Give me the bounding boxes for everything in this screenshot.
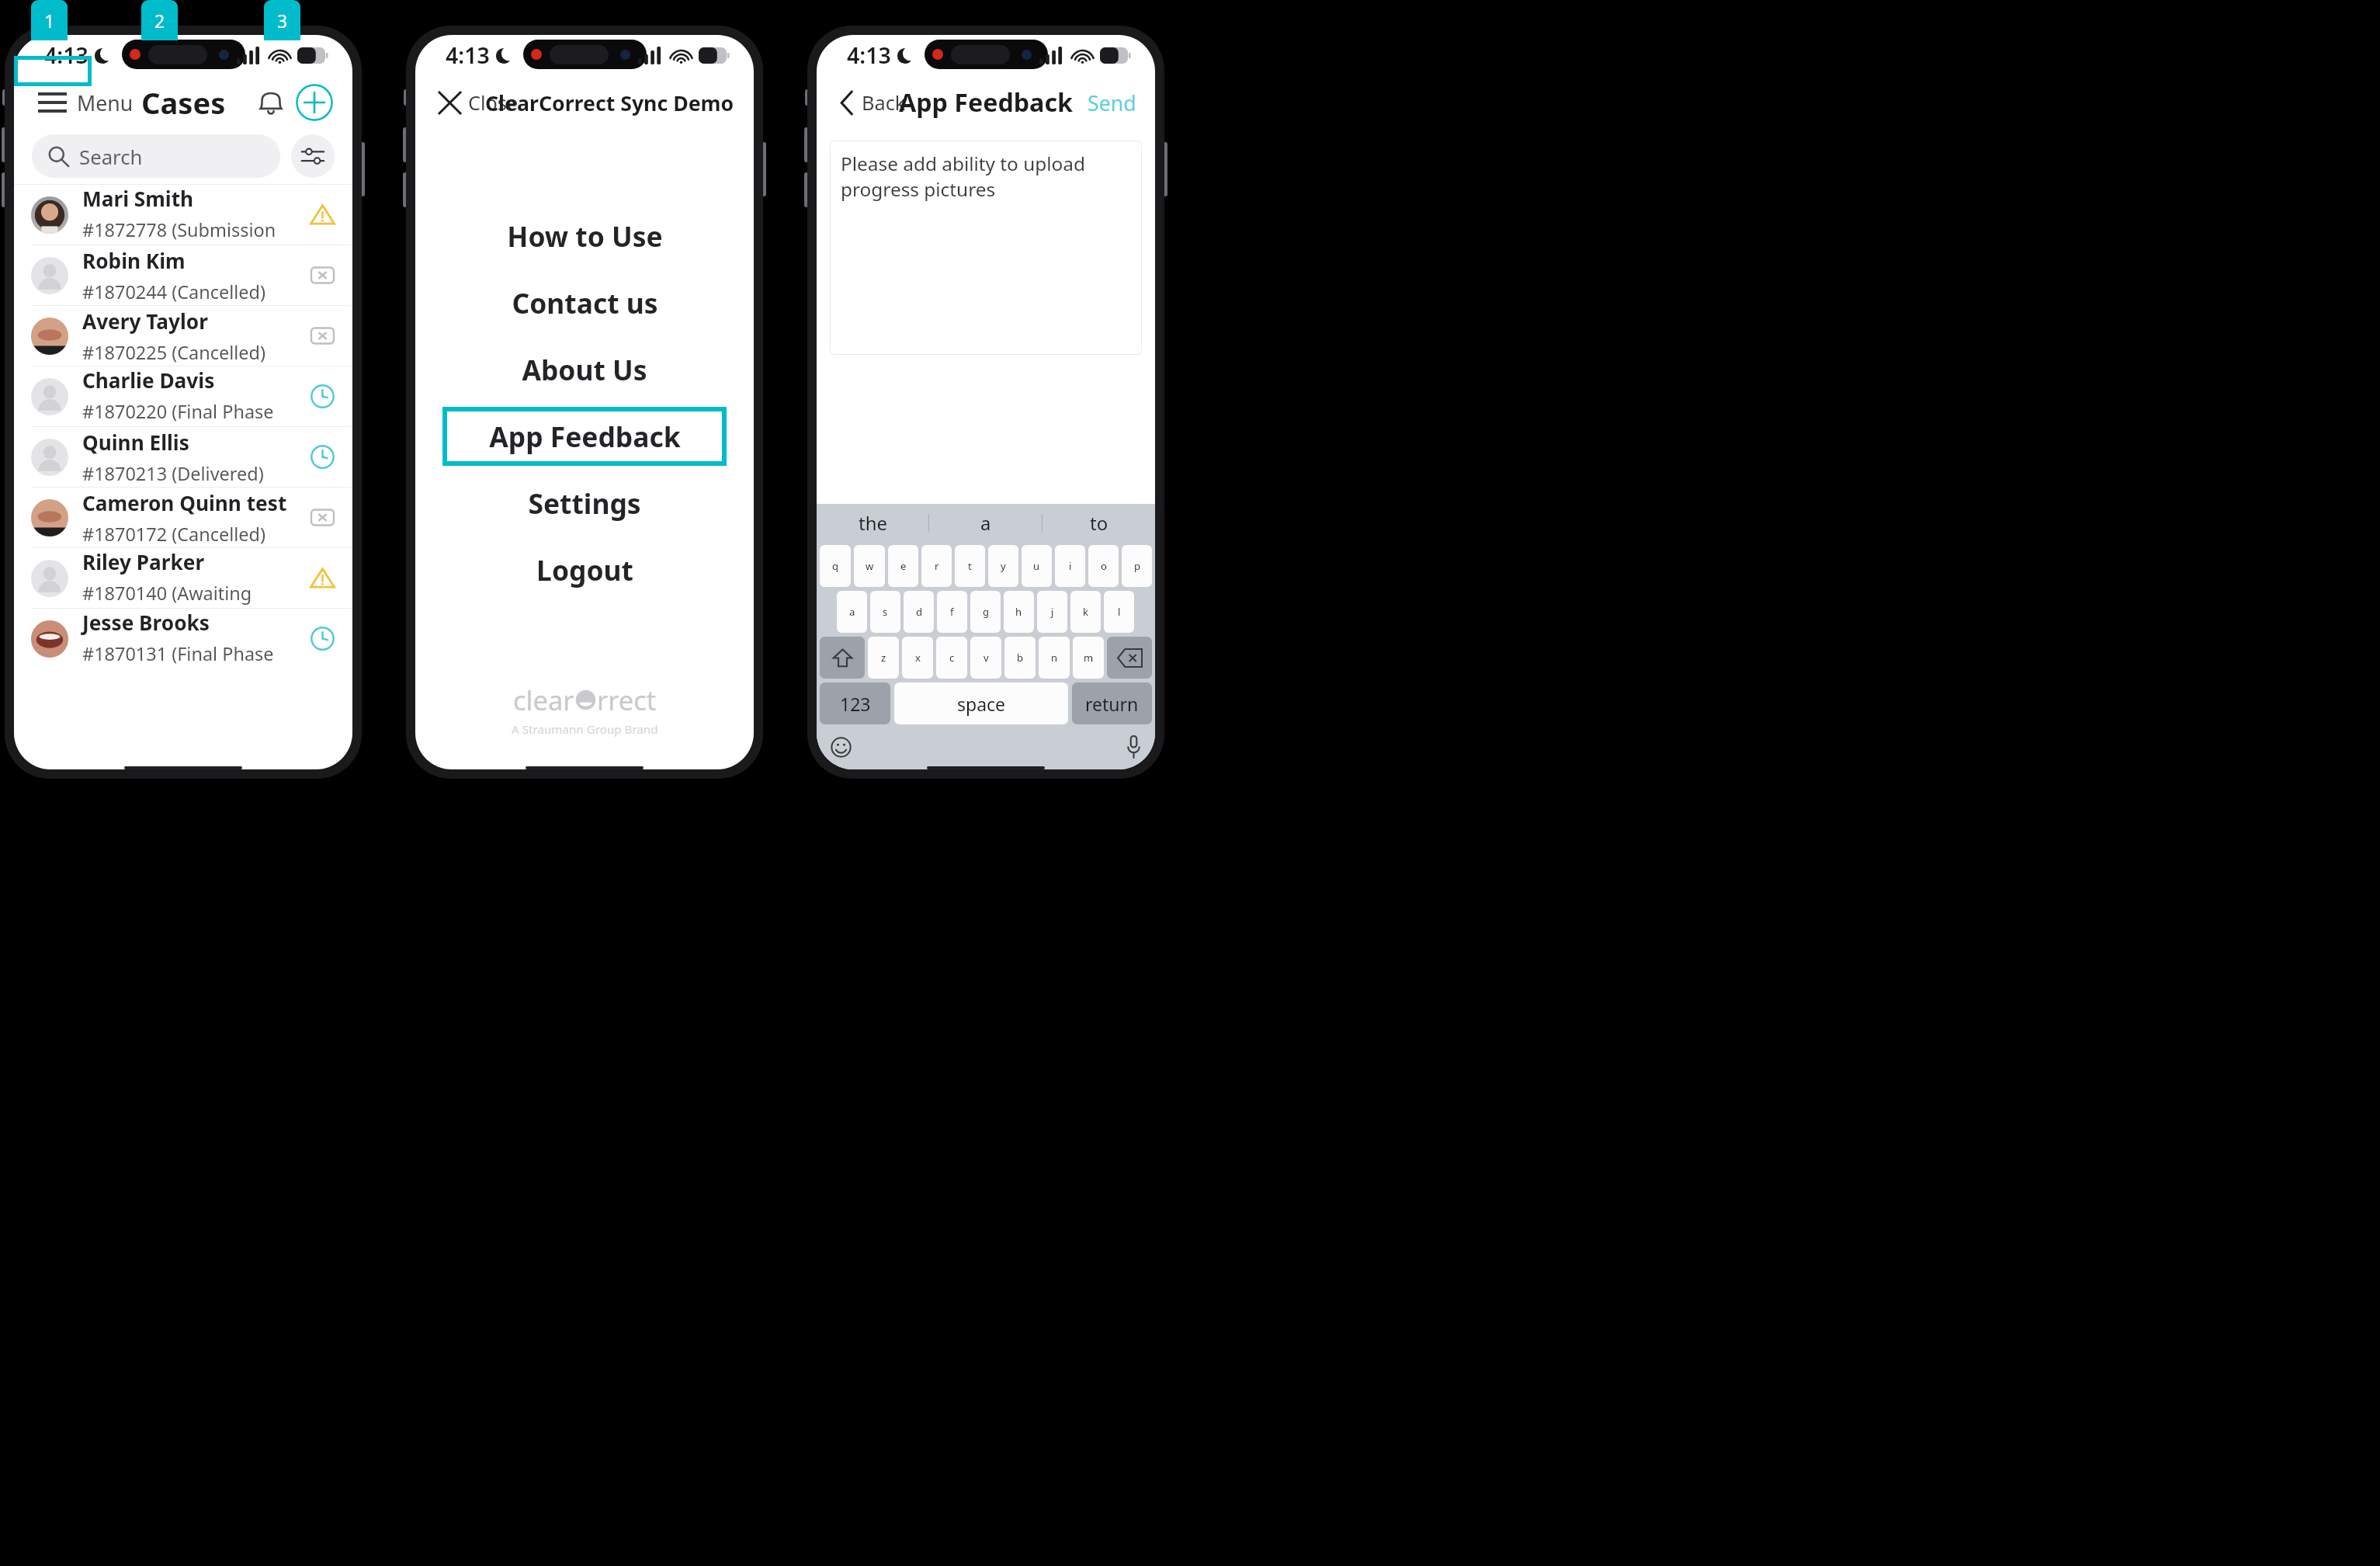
staticText: Quinn Ellis [82, 429, 189, 457]
button[interactable]: Shift [820, 637, 865, 679]
button[interactable]: Charlie Davis [14, 366, 352, 426]
staticText: x [915, 651, 921, 665]
button[interactable]: x [902, 637, 933, 679]
staticText: space [957, 692, 1006, 716]
staticText: clear [513, 682, 574, 718]
staticText: 4:13 [44, 40, 88, 71]
staticText: q [832, 559, 838, 573]
button[interactable]: y [988, 545, 1018, 587]
staticText: g [983, 605, 989, 619]
staticText: e [900, 559, 907, 573]
staticText: 123 [840, 692, 871, 716]
button[interactable]: App Feedback [442, 407, 727, 466]
button[interactable]: Riley Parker [14, 548, 352, 608]
staticText: l [1118, 605, 1121, 619]
button[interactable]: Settings [442, 474, 727, 533]
staticText: Menu [77, 89, 134, 116]
button[interactable]: n [1039, 637, 1070, 679]
button[interactable]: z [868, 637, 899, 679]
button[interactable]: Notifications [252, 84, 290, 121]
button[interactable]: a [929, 504, 1042, 541]
staticText: Cameron Quinn test [82, 489, 287, 517]
button[interactable]: return [1072, 682, 1152, 724]
button[interactable]: Robin Kim [14, 245, 352, 305]
button[interactable]: space [894, 682, 1068, 724]
button[interactable]: a [837, 591, 867, 633]
button[interactable]: q [820, 545, 851, 587]
staticText: Close [468, 89, 519, 116]
button[interactable]: l [1104, 591, 1134, 633]
button[interactable]: Backspace [1107, 637, 1152, 679]
button[interactable]: t [955, 545, 985, 587]
button[interactable]: Search [32, 134, 280, 178]
staticText: j [1051, 605, 1054, 619]
staticText: n [1051, 651, 1058, 665]
button[interactable]: e [888, 545, 918, 587]
button[interactable]: Close [435, 85, 523, 120]
button[interactable]: Back [835, 85, 911, 120]
staticText: App Feedback [899, 85, 1073, 120]
button[interactable]: s [870, 591, 900, 633]
staticText: How to Use [507, 217, 663, 255]
button[interactable]: Avery Taylor [14, 306, 352, 366]
button[interactable]: Please add ability to upload progress pi… [830, 141, 1142, 355]
button[interactable]: Add case [296, 84, 333, 121]
button[interactable]: Filter [291, 134, 335, 178]
button[interactable]: Dictate [1123, 733, 1144, 761]
button[interactable]: the [817, 504, 928, 541]
staticText: Riley Parker [82, 548, 205, 576]
staticText: 4:13 [847, 40, 891, 71]
staticText: k [1083, 605, 1088, 619]
staticText: Charlie Davis [82, 366, 215, 394]
button[interactable]: Logout [442, 540, 727, 599]
staticText: #1870220 (Final Phase Delivered) [82, 399, 304, 426]
button[interactable]: c [936, 637, 967, 679]
button[interactable]: Jesse Brooks [14, 609, 352, 668]
button[interactable]: Contact us [442, 273, 727, 332]
staticText: ClearCorrect Sync Demo [485, 89, 734, 116]
button[interactable]: 123 [820, 682, 890, 724]
button[interactable]: Cameron Quinn test [14, 488, 352, 547]
staticText: #1870225 (Cancelled) [82, 340, 265, 365]
staticText: p [1134, 559, 1140, 573]
staticText: a [980, 510, 991, 536]
staticText: to [1090, 510, 1108, 536]
staticText: z [881, 651, 886, 665]
staticText: Back [862, 89, 906, 116]
button[interactable]: f [937, 591, 967, 633]
staticText: r [935, 559, 939, 573]
button[interactable]: About Us [442, 340, 727, 399]
staticText: b [1017, 651, 1023, 665]
staticText: 4:13 [446, 40, 490, 71]
button[interactable]: r [921, 545, 952, 587]
button[interactable]: k [1070, 591, 1101, 633]
button[interactable]: m [1073, 637, 1104, 679]
staticText: f [950, 605, 954, 619]
staticText: Mari Smith [82, 185, 194, 213]
staticText: v [984, 651, 989, 665]
staticText: t [968, 559, 972, 573]
button[interactable]: Menu [33, 80, 138, 125]
button[interactable]: u [1022, 545, 1052, 587]
button[interactable]: w [854, 545, 885, 587]
staticText: Contact us [512, 284, 658, 321]
button[interactable]: v [970, 637, 1001, 679]
button[interactable]: g [970, 591, 1001, 633]
staticText: #1870213 (Delivered) [82, 461, 264, 486]
button[interactable]: b [1004, 637, 1036, 679]
button[interactable]: j [1037, 591, 1067, 633]
button[interactable]: to [1043, 504, 1155, 541]
button[interactable]: Emoji [827, 734, 855, 761]
button[interactable]: o [1088, 545, 1119, 587]
button[interactable]: h [1004, 591, 1034, 633]
staticText: h [1015, 605, 1022, 619]
button[interactable]: Quinn Ellis [14, 427, 352, 487]
button[interactable]: How to Use [442, 207, 727, 266]
button[interactable]: i [1055, 545, 1085, 587]
button[interactable]: Send [1069, 81, 1155, 124]
button[interactable]: d [904, 591, 934, 633]
staticText: 1 [44, 9, 55, 33]
staticText: Settings [528, 484, 641, 522]
button[interactable]: p [1122, 545, 1152, 587]
button[interactable]: Mari Smith [14, 185, 352, 245]
